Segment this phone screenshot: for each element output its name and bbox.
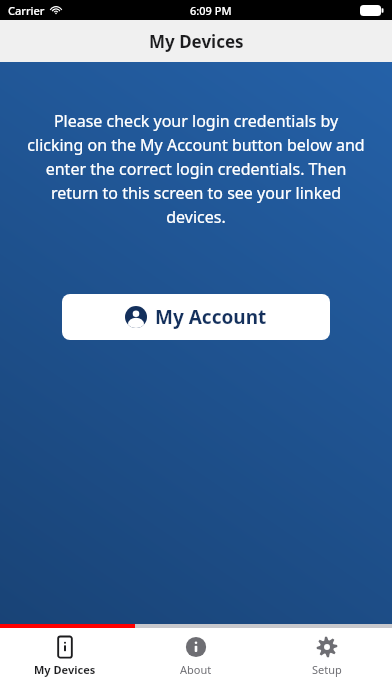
staticText: 6:09 PM: [190, 3, 232, 18]
staticText: My Devices: [34, 662, 96, 677]
other: My Devices: [54, 636, 76, 658]
button[interactable]: About: [130, 628, 261, 677]
staticText: My Account: [155, 304, 267, 330]
button[interactable]: My Account: [62, 294, 330, 340]
staticText: Please check your login credentials by c…: [24, 110, 368, 228]
other: Setup: [316, 636, 338, 658]
button[interactable]: Setup: [261, 628, 392, 677]
button[interactable]: My Devices: [0, 628, 130, 677]
other: About: [185, 636, 207, 658]
staticText: Carrier: [8, 3, 45, 18]
staticText: About: [180, 662, 212, 677]
staticText: Setup: [312, 662, 342, 677]
staticText: My Devices: [149, 30, 244, 53]
